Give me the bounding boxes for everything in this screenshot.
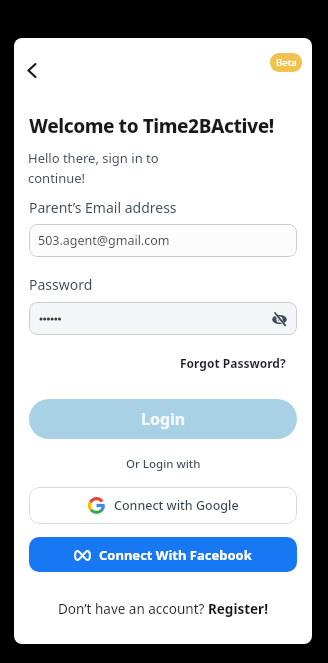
button[interactable] [29,302,297,335]
staticText: Login [141,408,186,430]
staticText: Password [29,275,93,294]
button[interactable] [271,311,287,327]
staticText: Welcome to Time2BActive! [29,113,274,139]
staticText: Connect With Facebook [99,546,252,564]
staticText: Parent’s Email address [29,198,177,217]
staticText: Hello there, sign in to continue! [28,149,159,187]
staticText: Or Login with [126,456,201,472]
staticText: Connect with Google [114,497,239,514]
staticText: Beta [276,56,297,69]
button[interactable] [16,54,48,86]
button[interactable]: Connect with Google [29,487,297,524]
staticText: Don’t have an account? Register! [58,600,268,618]
button[interactable]: 503.agent@gmail.com [29,224,297,257]
button[interactable]: Connect With Facebook [29,537,297,572]
button[interactable]: Don’t have an account? Register! [14,600,312,618]
staticText: 503.agent@gmail.com [38,232,170,249]
button[interactable]: Forgot Password? [180,355,286,371]
button[interactable]: Login [29,399,297,439]
